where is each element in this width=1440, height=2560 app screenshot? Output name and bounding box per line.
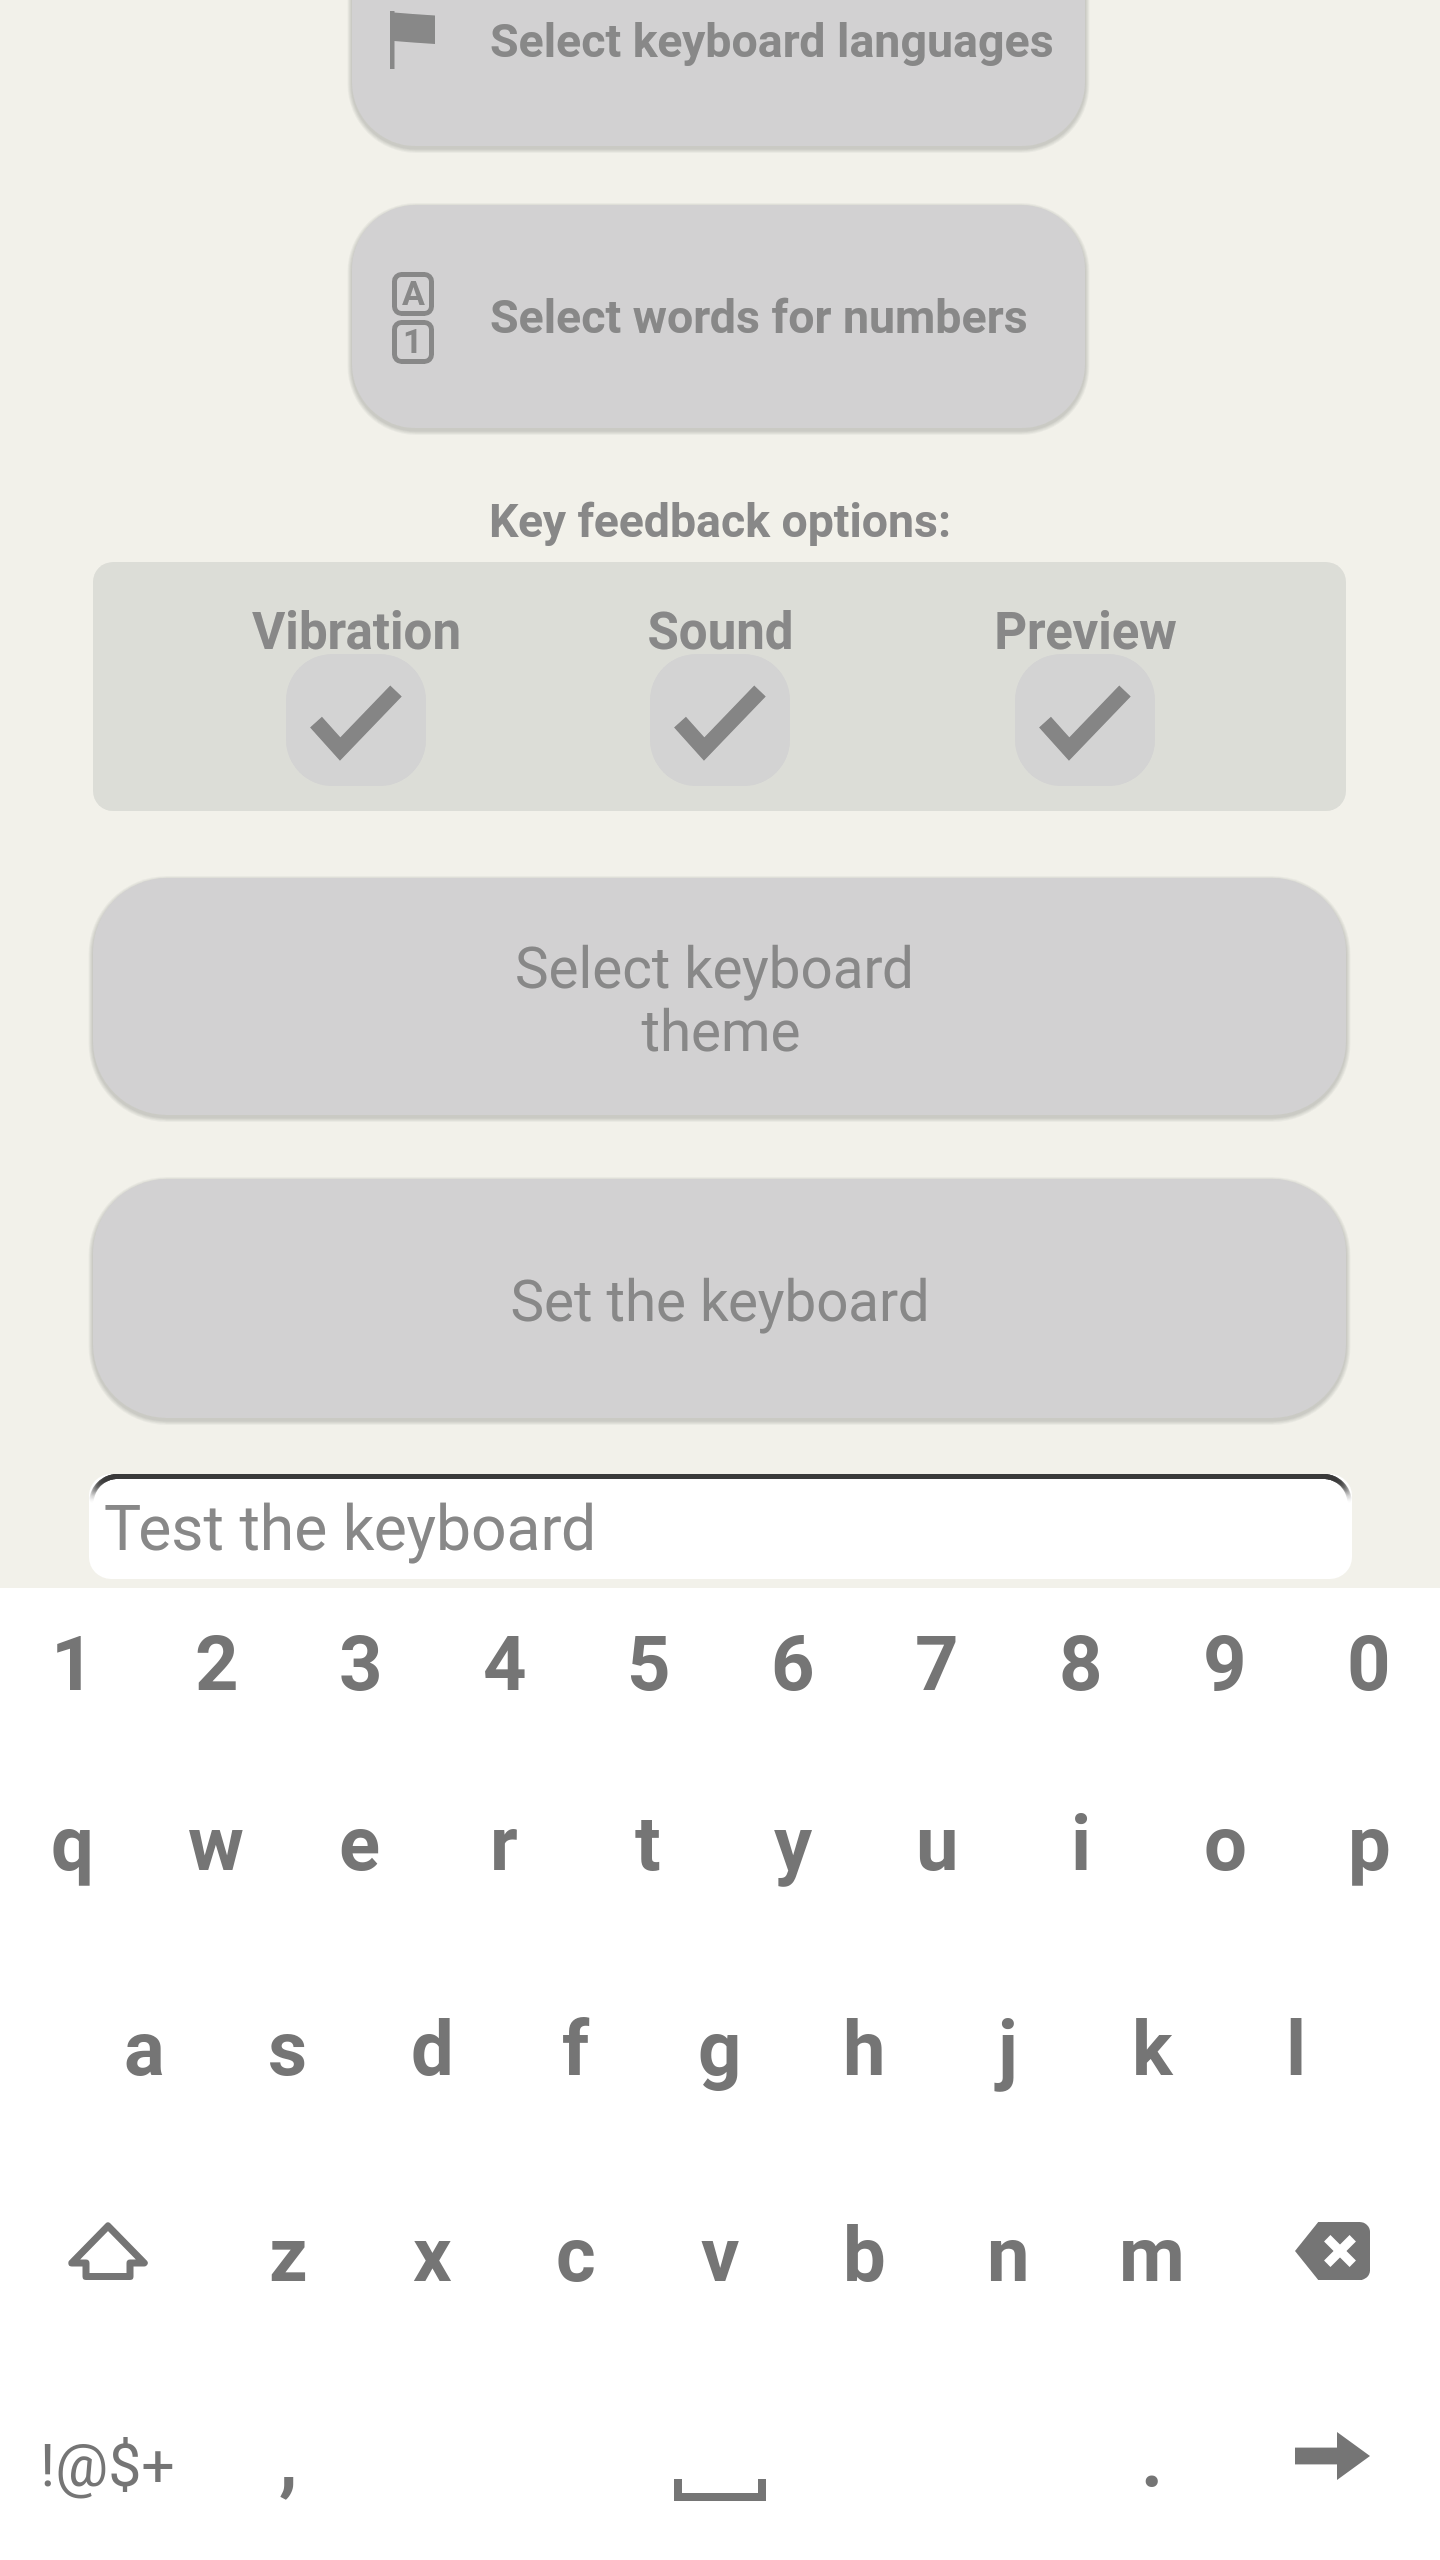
button[interactable]: r (432, 1754, 576, 1926)
staticText: m (1119, 2210, 1185, 2299)
staticText: w (188, 1799, 244, 1888)
button[interactable]: Space (640, 2410, 800, 2560)
button[interactable]: . (1080, 2370, 1224, 2542)
button[interactable]: !@$+ (35, 2370, 179, 2542)
button[interactable]: Vibration (174, 562, 538, 811)
button[interactable]: m (1080, 2165, 1224, 2337)
staticText: 1 (403, 321, 423, 361)
button[interactable]: q (0, 1754, 144, 1926)
button[interactable]: e (288, 1754, 432, 1926)
button[interactable]: j (936, 1959, 1080, 2131)
button[interactable]: 6 (721, 1574, 865, 1746)
staticText: Select keyboard languages (490, 14, 1054, 68)
staticText: 6 (771, 1619, 815, 1708)
other: Select words for numbers (392, 272, 434, 364)
staticText: n (987, 2210, 1030, 2299)
button[interactable]: Enter (1252, 2376, 1412, 2536)
staticText: Key feedback options: (489, 494, 951, 548)
button[interactable]: d (360, 1959, 504, 2131)
button[interactable]: Backspace (1252, 2171, 1412, 2331)
button[interactable]: Select keyboard (93, 878, 1346, 1115)
button[interactable]: 7 (865, 1574, 1009, 1746)
staticText: c (556, 2210, 596, 2299)
button[interactable]: x (360, 2165, 504, 2337)
button[interactable]: 3 (289, 1574, 433, 1746)
button[interactable]: Preview (903, 562, 1267, 811)
button[interactable]: 4 (433, 1574, 577, 1746)
button[interactable]: a (72, 1959, 216, 2131)
button[interactable]: Shift (28, 2171, 188, 2331)
button[interactable]: t (576, 1754, 720, 1926)
button[interactable]: k (1080, 1959, 1224, 2131)
staticText: f (562, 2004, 590, 2093)
staticText: y (774, 1799, 813, 1888)
staticText: 4 (483, 1619, 527, 1708)
button[interactable]: 9 (1153, 1574, 1297, 1746)
staticText: !@$+ (40, 2431, 175, 2500)
button[interactable]: , (216, 2370, 360, 2542)
staticText: 5 (627, 1619, 671, 1708)
staticText: . (1141, 2415, 1164, 2504)
staticText: r (490, 1799, 518, 1888)
staticText: g (698, 2004, 742, 2093)
button[interactable]: w (144, 1754, 288, 1926)
staticText: , (279, 2415, 298, 2504)
button[interactable]: 5 (577, 1574, 721, 1746)
button[interactable]: u (865, 1754, 1009, 1926)
staticText: a (124, 2004, 165, 2093)
staticText: b (843, 2210, 886, 2299)
button[interactable]: z (216, 2165, 360, 2337)
staticText: theme (641, 999, 801, 1065)
staticText: Select words for numbers (490, 290, 1028, 344)
staticText: j (998, 2004, 1018, 2093)
button[interactable]: b (792, 2165, 936, 2337)
button[interactable]: g (648, 1959, 792, 2131)
staticText: Select keyboard (515, 936, 914, 1002)
staticText: A (402, 273, 425, 313)
button[interactable]: l (1224, 1959, 1368, 2131)
staticText: e (339, 1799, 381, 1888)
staticText: d (411, 2004, 454, 2093)
staticText: 2 (195, 1619, 239, 1708)
staticText: q (51, 1799, 94, 1888)
staticText: 8 (1059, 1619, 1103, 1708)
staticText: 7 (915, 1619, 959, 1708)
button[interactable]: n (936, 2165, 1080, 2337)
staticText: i (1071, 1799, 1092, 1888)
staticText: p (1348, 1799, 1391, 1888)
button[interactable]: 0 (1297, 1574, 1440, 1746)
staticText: 9 (1203, 1619, 1247, 1708)
staticText: h (843, 2004, 886, 2093)
staticText: Test the keyboard (104, 1492, 597, 1565)
staticText: u (916, 1799, 959, 1888)
button[interactable]: 2 (145, 1574, 289, 1746)
button[interactable]: y (721, 1754, 865, 1926)
staticText: x (413, 2210, 452, 2299)
staticText: t (635, 1799, 661, 1888)
staticText: Vibration (252, 602, 461, 662)
staticText: z (269, 2210, 308, 2299)
button[interactable]: Select words for numbers (352, 205, 1085, 428)
button[interactable]: 8 (1009, 1574, 1153, 1746)
staticText: s (268, 2004, 308, 2093)
staticText: k (1132, 2004, 1173, 2093)
button[interactable]: Set the keyboard (93, 1179, 1346, 1418)
button[interactable]: c (504, 2165, 648, 2337)
staticText: Preview (994, 602, 1177, 662)
button[interactable]: f (504, 1959, 648, 2131)
staticText: Set the keyboard (510, 1269, 930, 1335)
button[interactable]: Select keyboard languages (352, 0, 1085, 146)
button[interactable]: Sound (538, 562, 902, 811)
button[interactable]: p (1297, 1754, 1440, 1926)
staticText: 3 (339, 1619, 383, 1708)
button[interactable]: i (1009, 1754, 1153, 1926)
button[interactable]: Test the keyboard (89, 1474, 1352, 1579)
button[interactable]: o (1153, 1754, 1297, 1926)
button[interactable]: s (216, 1959, 360, 2131)
button[interactable]: 1 (1, 1574, 145, 1746)
staticText: Sound (647, 602, 794, 662)
button[interactable]: v (648, 2165, 792, 2337)
staticText: o (1204, 1799, 1247, 1888)
button[interactable]: h (792, 1959, 936, 2131)
staticText: l (1286, 2004, 1307, 2093)
